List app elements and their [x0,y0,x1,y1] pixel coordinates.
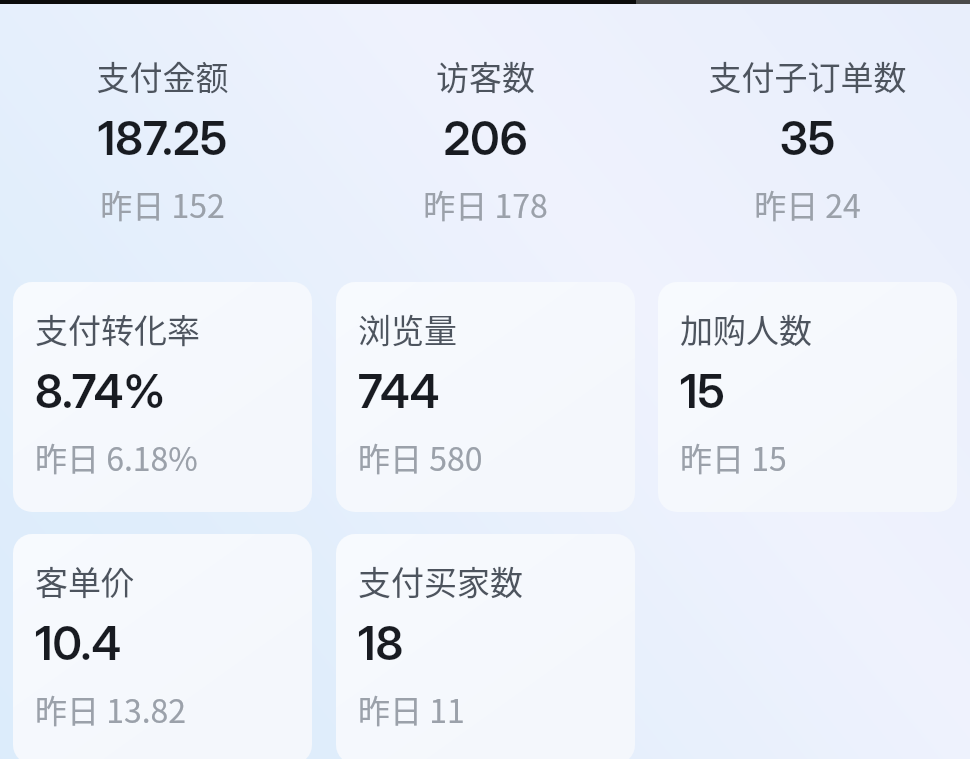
staticText: 35 [658,110,957,166]
staticText: 昨日 15 [680,434,957,480]
staticText: 昨日 11 [358,686,635,732]
button[interactable]: 支付金额 [13,29,312,259]
staticText: 支付子订单数 [658,52,957,100]
staticText: 昨日 178 [336,181,635,227]
staticText: 昨日 6.18% [35,434,312,480]
staticText: 加购人数 [680,305,957,353]
staticText: 访客数 [336,52,635,100]
staticText: 浏览量 [358,305,635,353]
staticText: 支付买家数 [358,557,635,605]
staticText: 206 [336,110,635,166]
staticText: 8.74% [35,363,312,419]
staticText: 744 [358,363,635,419]
staticText: 昨日 152 [13,181,312,227]
button[interactable]: 访客数 [336,29,635,259]
button[interactable]: 支付子订单数 [658,29,957,259]
staticText: 昨日 24 [658,181,957,227]
staticText: 支付金额 [13,52,312,100]
staticText: 187.25 [13,110,312,166]
staticText: 昨日 13.82 [35,686,312,732]
staticText: 15 [680,363,957,419]
staticText: 客单价 [35,557,312,605]
button[interactable]: 支付买家数 [336,534,635,759]
button[interactable]: 客单价 [13,534,312,759]
staticText: 10.4 [35,615,312,671]
staticText: 昨日 580 [358,434,635,480]
button[interactable]: 支付转化率 [13,282,312,512]
staticText: 18 [358,615,635,671]
button[interactable]: 浏览量 [336,282,635,512]
button[interactable]: 加购人数 [658,282,957,512]
staticText: 支付转化率 [35,305,312,353]
